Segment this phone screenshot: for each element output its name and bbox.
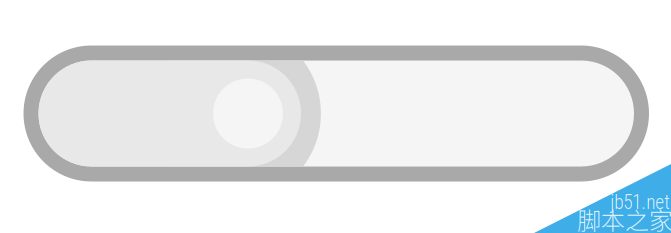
staticText: 脚本之家 xyxy=(577,202,671,233)
button[interactable]: Toggle switch xyxy=(23,45,649,181)
staticText: jb51.net xyxy=(610,191,670,214)
